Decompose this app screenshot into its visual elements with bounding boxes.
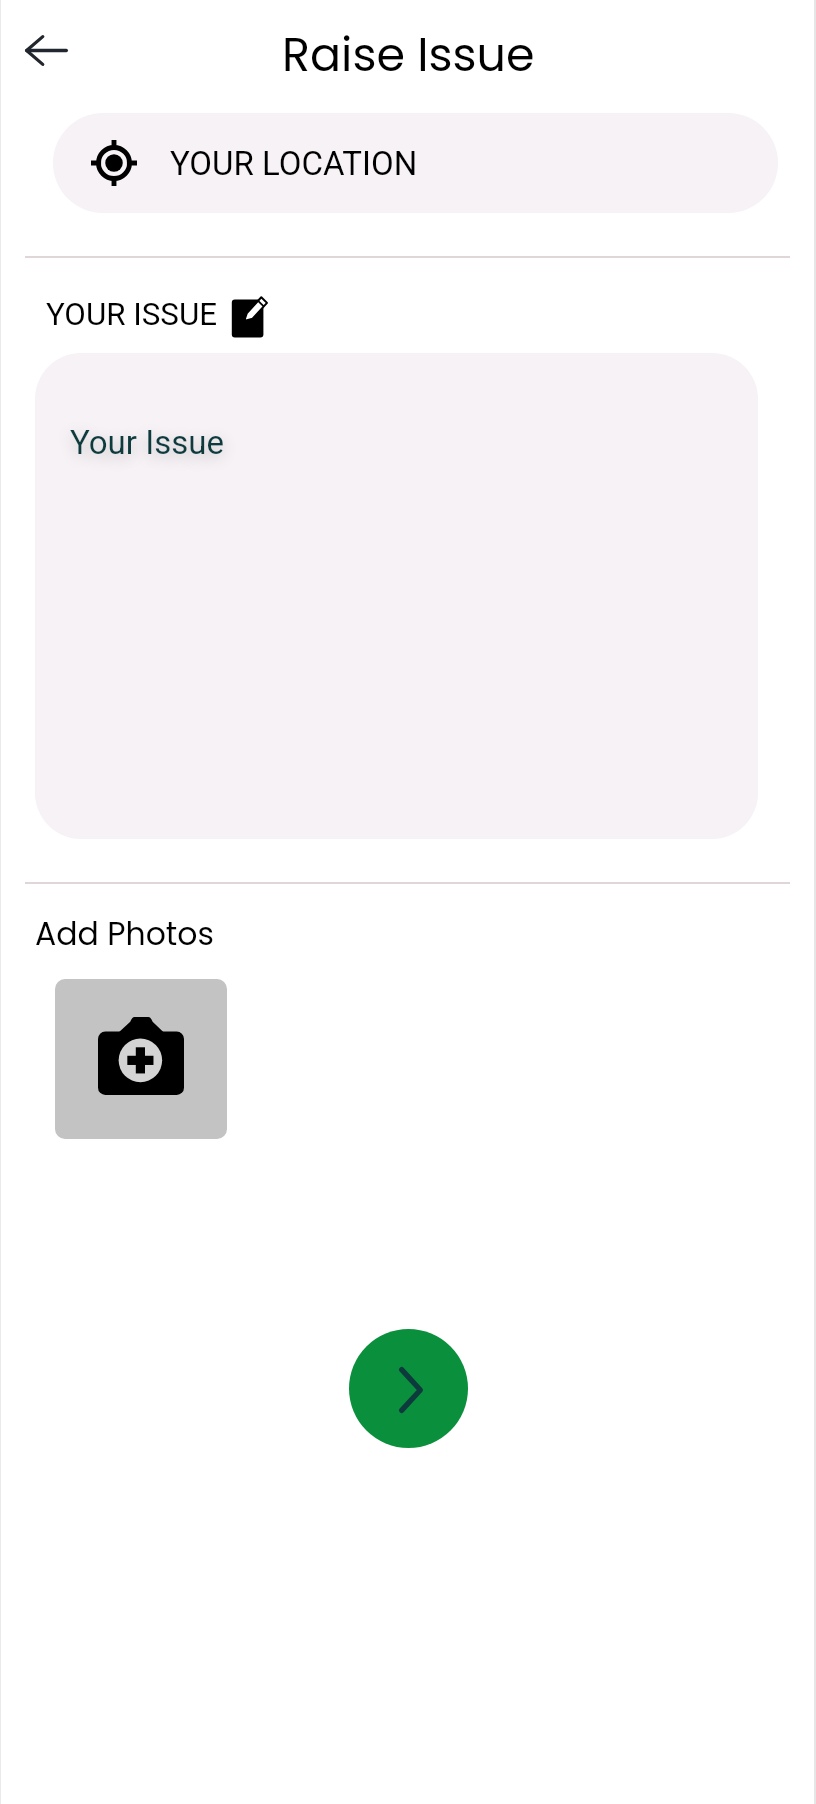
staticText: Your Issue bbox=[70, 423, 224, 462]
button[interactable]: YOUR LOCATION bbox=[53, 113, 778, 213]
button[interactable]: Add photo bbox=[55, 979, 227, 1139]
staticText: Add Photos bbox=[35, 912, 214, 956]
button[interactable]: Your Issue bbox=[35, 353, 758, 839]
button[interactable]: Next bbox=[349, 1329, 468, 1448]
staticText: YOUR ISSUE bbox=[46, 296, 217, 333]
staticText: YOUR LOCATION bbox=[170, 144, 418, 183]
button[interactable]: Edit issue bbox=[225, 291, 273, 342]
button[interactable]: Back bbox=[14, 18, 78, 82]
staticText: Raise Issue bbox=[282, 23, 535, 87]
